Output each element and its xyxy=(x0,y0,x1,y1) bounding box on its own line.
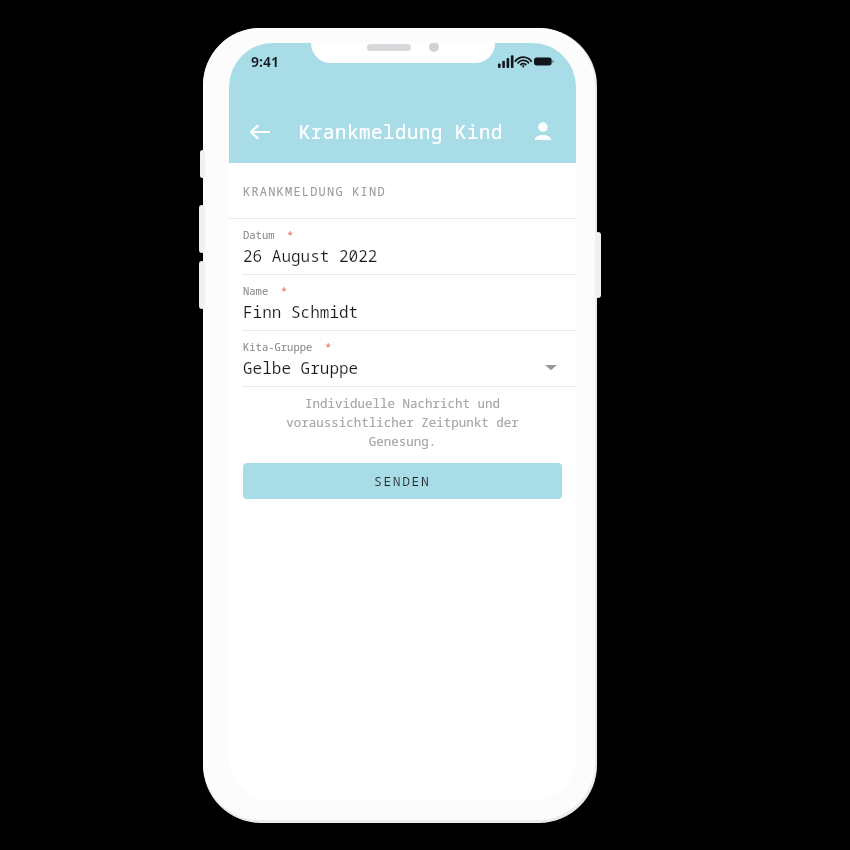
staticText: 9:41 xyxy=(251,52,279,71)
staticText: SENDEN xyxy=(374,472,431,490)
button[interactable]: Zurück xyxy=(237,109,283,155)
staticText: Name * xyxy=(243,284,288,298)
staticText: Finn Schmidt xyxy=(243,301,359,323)
staticText: Gelbe Gruppe xyxy=(243,357,359,379)
button[interactable]: Profil xyxy=(520,109,566,155)
button[interactable]: SENDEN xyxy=(243,463,562,499)
staticText: 26 August 2022 xyxy=(243,245,378,267)
staticText: Datum * xyxy=(243,228,294,242)
staticText: Individuelle Nachricht und voraussichtli… xyxy=(251,395,554,450)
staticText: Kita-Gruppe * xyxy=(243,340,332,354)
button[interactable]: Name * xyxy=(229,275,576,330)
staticText: KRANKMELDUNG KIND xyxy=(243,183,386,199)
staticText: Krankmeldung Kind xyxy=(299,119,504,145)
button[interactable]: Datum * xyxy=(229,219,576,274)
button[interactable]: Individuelle Nachricht und voraussichtli… xyxy=(229,387,576,457)
button[interactable]: Kita-Gruppe * xyxy=(229,331,576,386)
